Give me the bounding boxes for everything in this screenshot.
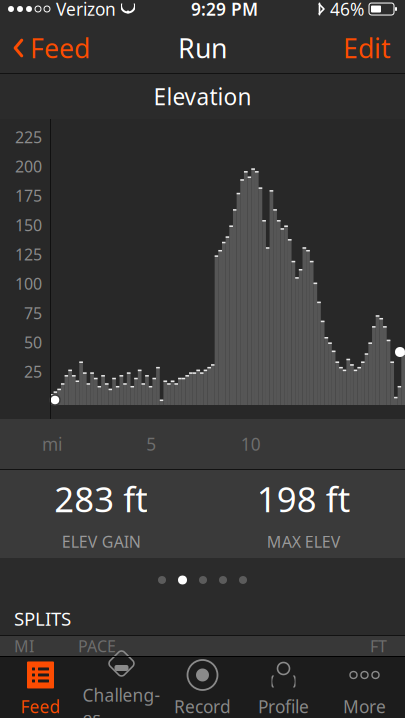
staticText: 198 ft [257,476,351,522]
staticText: Edit [343,30,391,66]
staticText: 25 [24,361,42,382]
staticText: mi [42,432,62,455]
staticText: SPLITS [14,606,71,631]
staticText: MI [14,635,34,657]
staticText: 100 [15,273,42,294]
button[interactable]: Feed [0,656,81,718]
staticText: 175 [15,185,42,206]
staticText: 10 [241,432,261,455]
staticText: 75 [24,302,42,324]
button[interactable]: Challenges [81,656,162,718]
staticText: 225 [15,126,42,148]
staticText: ELEV GAIN [62,531,141,552]
staticText: 150 [15,214,42,236]
staticText: 46% [330,0,364,20]
staticText: PACE [78,635,116,657]
staticText: 283 ft [54,476,148,522]
staticText: Feed [30,30,90,66]
staticText: 9:29 PM [191,0,258,20]
staticText: Profile [258,695,309,718]
button[interactable]: More [324,656,405,718]
staticText: 5 [146,432,156,455]
staticText: FT [370,635,387,657]
staticText: Record [174,695,231,718]
button[interactable]: Edit [329,22,405,74]
staticText: Run [178,30,227,66]
button[interactable]: Profile [243,656,324,718]
staticText: More [343,695,386,718]
staticText: MAX ELEV [267,531,341,552]
staticText: 50 [24,332,42,353]
staticText: Verizon [56,0,116,20]
staticText: 200 [15,156,42,177]
staticText: 125 [15,244,42,265]
button[interactable]: Record [162,656,243,718]
button[interactable]: Feed [0,22,100,74]
staticText: Elevation [153,81,251,111]
staticText: Challenges [82,683,160,718]
staticText: Feed [20,695,60,718]
